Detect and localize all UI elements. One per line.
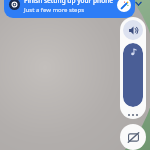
staticText: Just a few more steps	[24, 6, 85, 14]
button[interactable]: Media volume slider	[123, 43, 143, 107]
staticText: Finish setting up your phone	[24, 0, 113, 5]
button[interactable]: Finish setting up your phone	[4, 0, 135, 18]
button[interactable]: Assistant	[117, 0, 131, 12]
button[interactable]: Cast media off	[120, 124, 146, 150]
button[interactable]: Expand notification	[131, 0, 146, 11]
button[interactable]: Volume	[123, 20, 143, 40]
button[interactable]: More volume controls	[123, 111, 143, 119]
